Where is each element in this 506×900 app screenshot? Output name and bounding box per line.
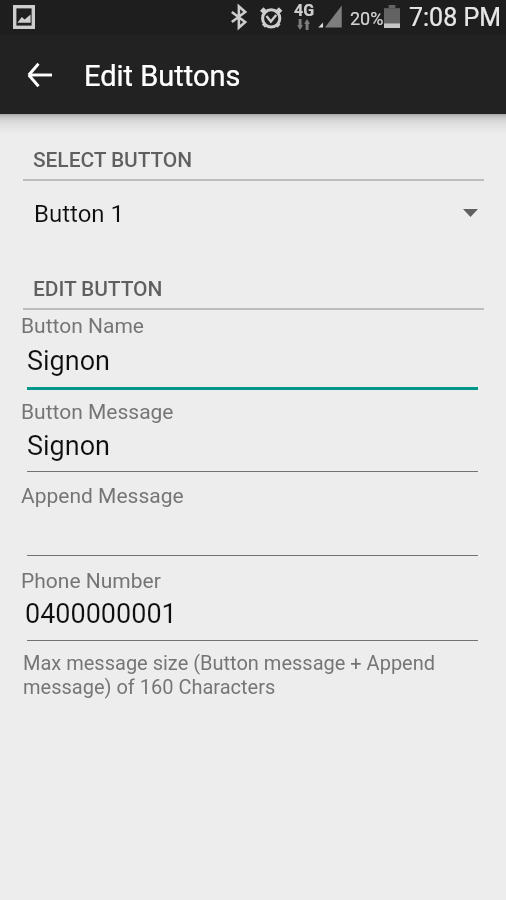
staticText: 0400000001	[25, 598, 177, 630]
button[interactable]	[21, 398, 478, 479]
staticText: 20%	[350, 8, 384, 29]
button[interactable]: Back	[12, 48, 66, 102]
staticText: SELECT BUTTON	[33, 148, 193, 173]
staticText: Button Message	[21, 400, 174, 425]
staticText: Button Name	[21, 314, 144, 339]
button[interactable]	[21, 482, 478, 563]
staticText: Append Message	[21, 484, 184, 509]
button[interactable]	[21, 567, 478, 648]
button[interactable]: Button 1	[0, 190, 506, 238]
button[interactable]	[21, 312, 478, 396]
staticText: 4G	[294, 1, 315, 20]
staticText: Phone Number	[21, 569, 161, 594]
staticText: 7:08 PM	[409, 3, 502, 32]
staticText: EDIT BUTTON	[33, 277, 163, 302]
staticText: Max message size (Button message + Appen…	[23, 651, 493, 699]
staticText: Signon	[27, 430, 110, 462]
staticText: Button 1	[34, 200, 125, 228]
staticText: Edit Buttons	[84, 59, 241, 93]
staticText: Signon	[27, 345, 110, 377]
